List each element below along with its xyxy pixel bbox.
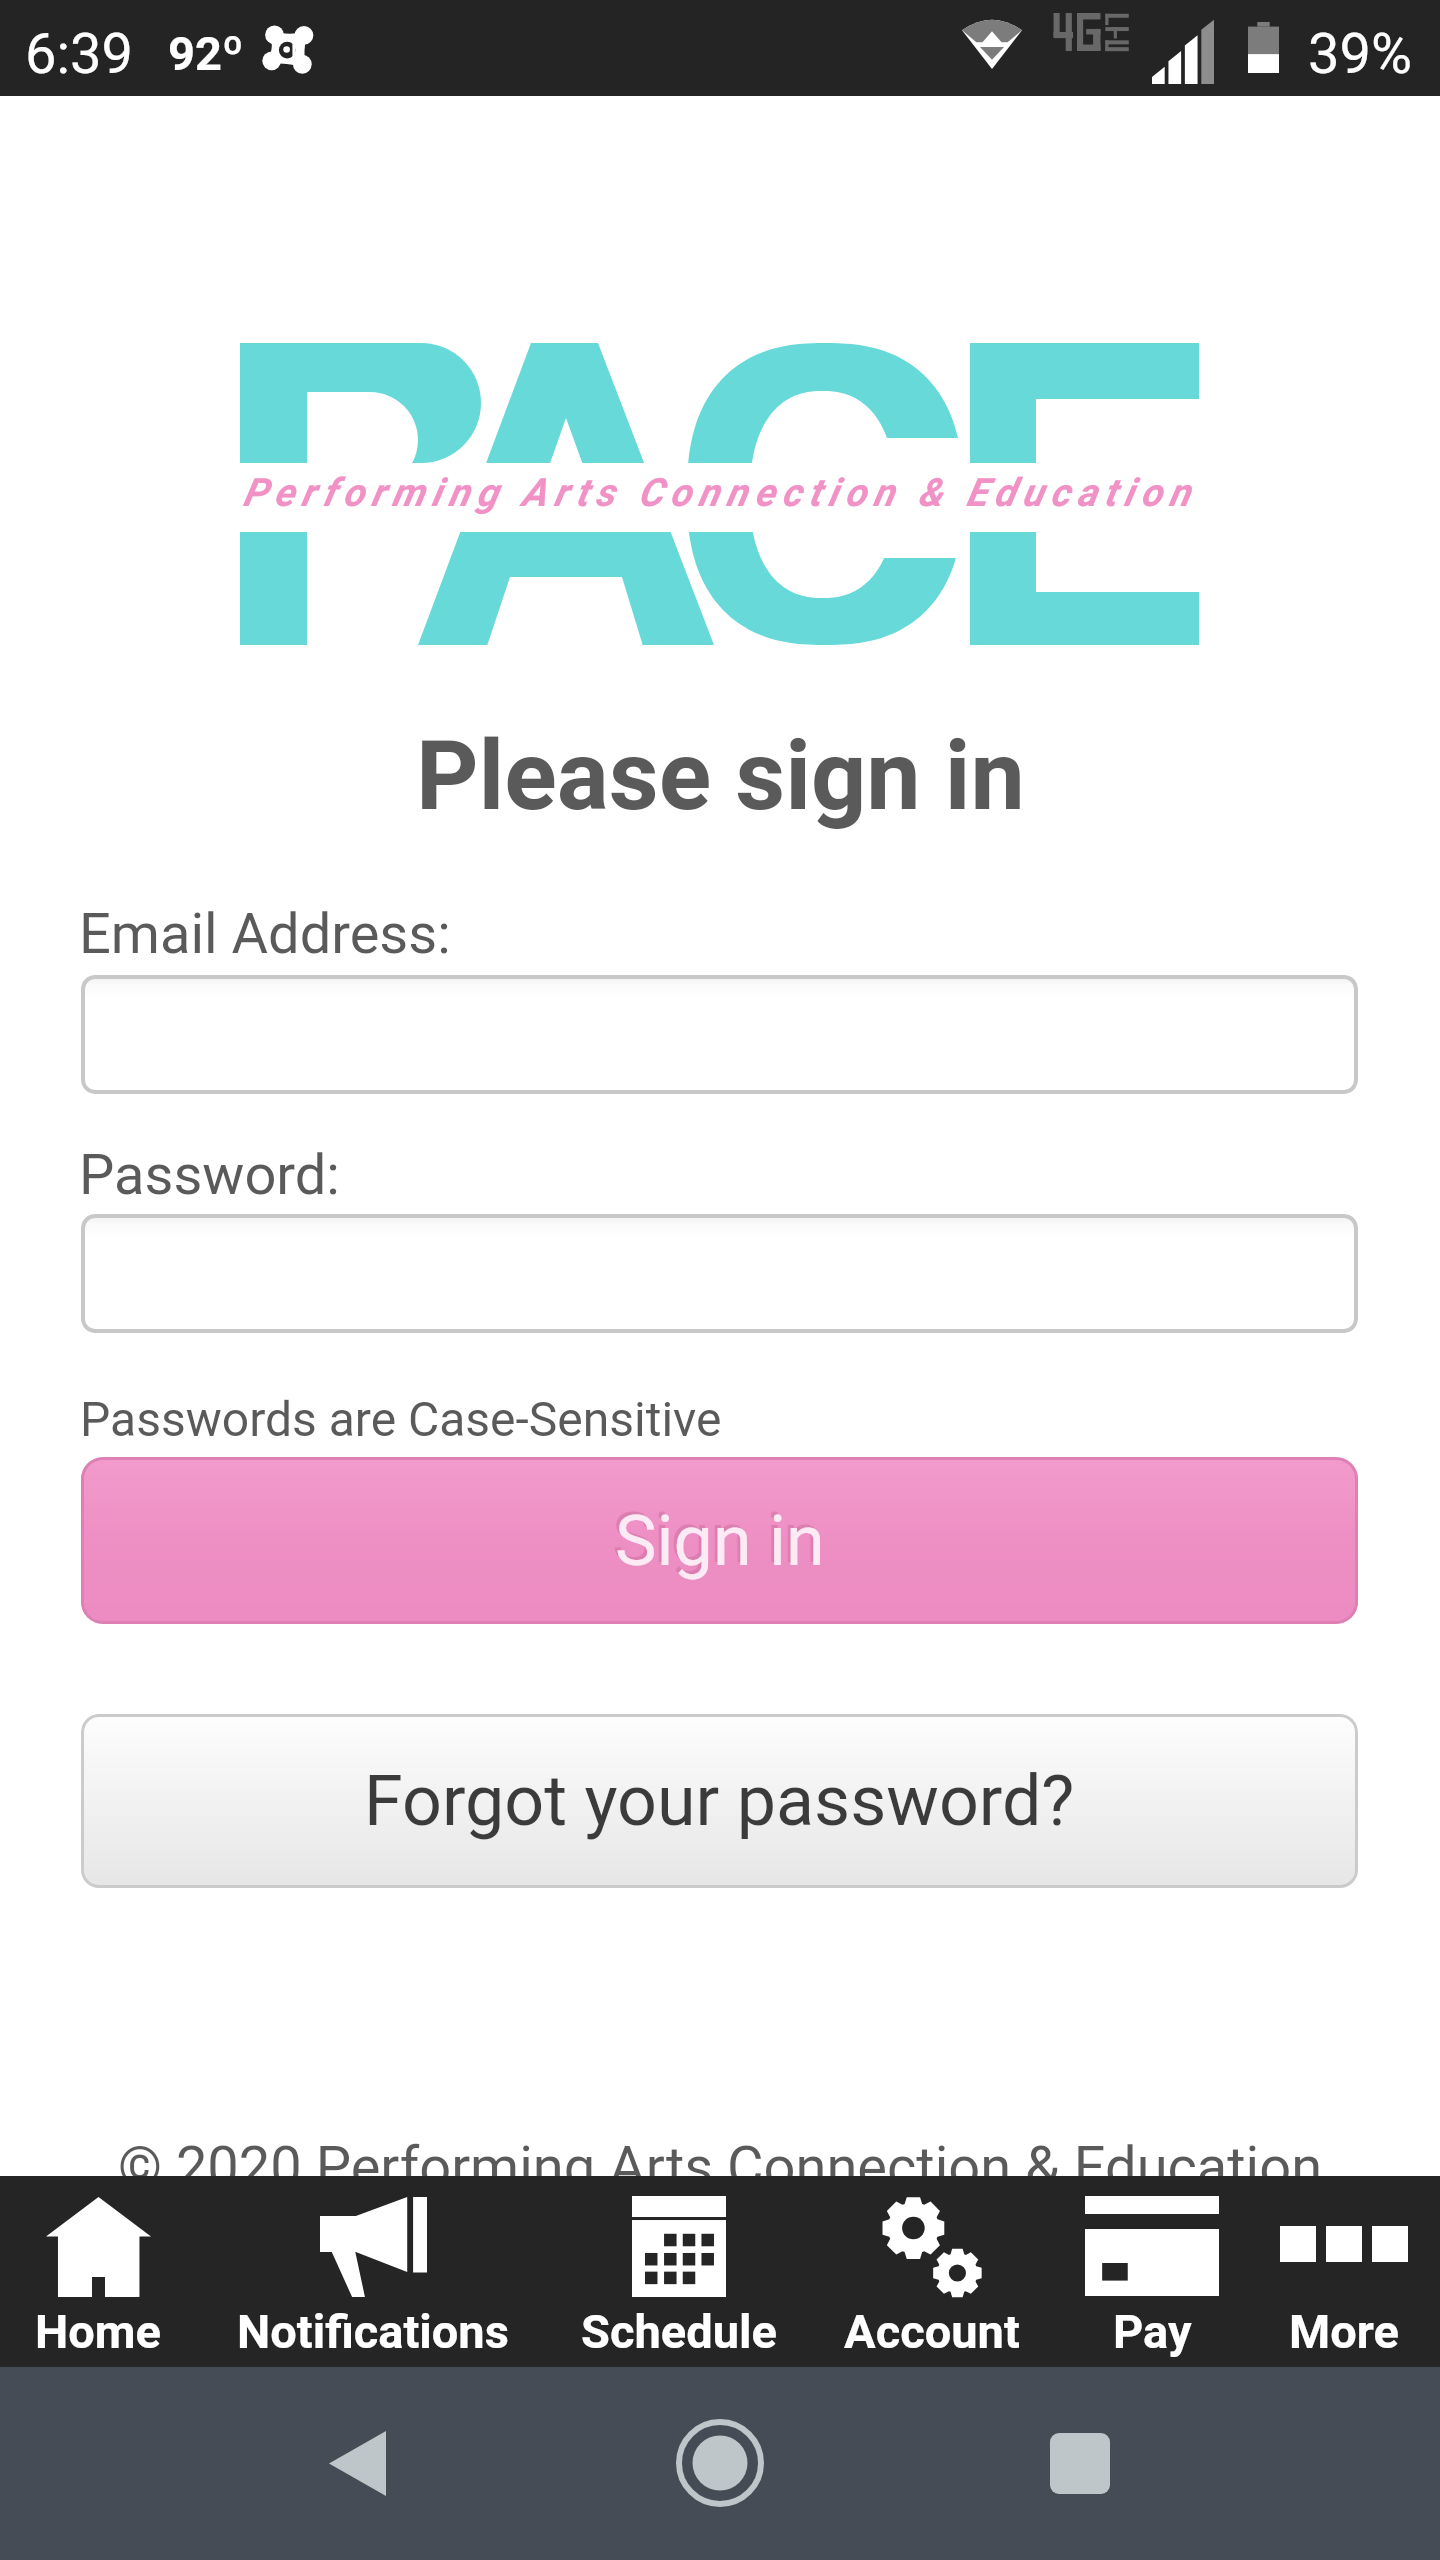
button[interactable] <box>81 1214 1358 1333</box>
staticText: Home <box>35 2304 161 2359</box>
button[interactable]: Back <box>267 2393 447 2533</box>
button[interactable]: Schedule <box>550 2176 808 2367</box>
button[interactable]: Forgot your password? <box>81 1714 1358 1888</box>
staticText: Passwords are Case-Sensitive <box>80 1391 722 1447</box>
button[interactable]: Home <box>0 2176 196 2367</box>
staticText: Account <box>844 2304 1020 2359</box>
staticText: Password: <box>79 1142 340 1208</box>
staticText: Performing Arts Connection & Education <box>240 470 1199 516</box>
staticText: Schedule <box>581 2304 777 2359</box>
staticText: 92º <box>168 26 244 81</box>
button[interactable] <box>81 975 1358 1094</box>
staticText: Please sign in <box>416 719 1025 833</box>
staticText: 39% <box>1308 21 1412 87</box>
button[interactable]: Recent apps <box>990 2393 1170 2533</box>
staticText: Sign in <box>612 1497 822 1579</box>
staticText: 6:39 <box>25 21 133 87</box>
staticText: More <box>1289 2304 1399 2359</box>
staticText: Pay <box>1113 2304 1192 2359</box>
staticText: Sign in <box>615 1500 825 1582</box>
button[interactable]: Sign in <box>81 1457 1358 1624</box>
staticText: Notifications <box>237 2304 509 2359</box>
staticText: © 2020 Performing Arts Connection & Educ… <box>118 2134 1323 2200</box>
staticText: Email Address: <box>79 901 451 967</box>
button[interactable]: Home <box>630 2393 810 2533</box>
button[interactable]: More <box>1248 2176 1440 2367</box>
button[interactable]: Account <box>808 2176 1056 2367</box>
staticText: Forgot your password? <box>364 1760 1075 1842</box>
button[interactable]: Pay <box>1056 2176 1248 2367</box>
button[interactable]: Notifications <box>196 2176 550 2367</box>
